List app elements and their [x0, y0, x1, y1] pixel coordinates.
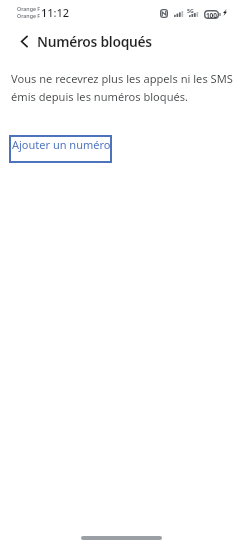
- staticText: Orange F: [17, 5, 41, 12]
- staticText: 100: [206, 11, 217, 20]
- button[interactable]: Retour: [9, 26, 39, 56]
- button[interactable]: Ajouter un numéro: [9, 135, 112, 163]
- staticText: 11:12: [41, 5, 70, 20]
- staticText: Vous ne recevrez plus les appels ni les …: [11, 71, 244, 104]
- staticText: Ajouter un numéro: [12, 137, 111, 152]
- staticText: Numéros bloqués: [37, 32, 152, 51]
- staticText: 5G: [187, 7, 194, 14]
- staticText: Orange F: [17, 12, 41, 19]
